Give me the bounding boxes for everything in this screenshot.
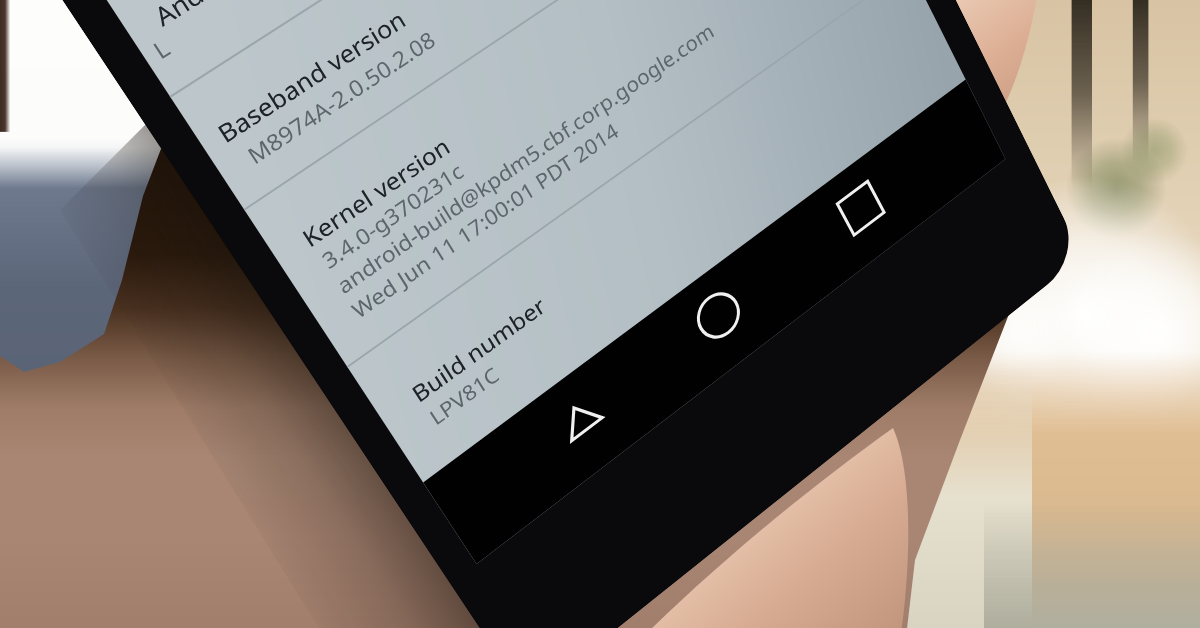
staticText: Baseband version [211, 2, 412, 150]
staticText: android-build@kpdm5.cbf.corp.google.com [331, 15, 718, 299]
button[interactable]: android-build@kpdm5.cbf.corp.google.com [331, 15, 718, 299]
button[interactable]: Build number [406, 290, 551, 409]
button[interactable]: Recents [803, 146, 917, 270]
button[interactable]: L [146, 31, 176, 65]
button[interactable]: 3.4.0-g370231c [316, 155, 468, 274]
button[interactable]: Home [657, 252, 778, 379]
staticText: 3.4.0-g370231c [316, 155, 468, 274]
staticText: Kernel version [296, 129, 455, 254]
button[interactable]: M8974A-2.0.50.2.08 [241, 23, 440, 170]
button[interactable]: Baseband version [211, 2, 412, 150]
button[interactable]: Android version [147, 0, 334, 33]
staticText: Build number [406, 290, 551, 409]
staticText: LPV81C [424, 360, 504, 431]
staticText: L [146, 31, 176, 65]
staticText: M8974A-2.0.50.2.08 [241, 23, 440, 170]
button[interactable]: Wed Jun 11 17:00:01 PDT 2014 [346, 116, 623, 324]
button[interactable]: Kernel version [296, 129, 455, 254]
button[interactable]: Back [516, 354, 644, 485]
staticText: Wed Jun 11 17:00:01 PDT 2014 [346, 116, 623, 324]
staticText: Android version [147, 0, 334, 33]
button[interactable]: LPV81C [424, 360, 504, 431]
